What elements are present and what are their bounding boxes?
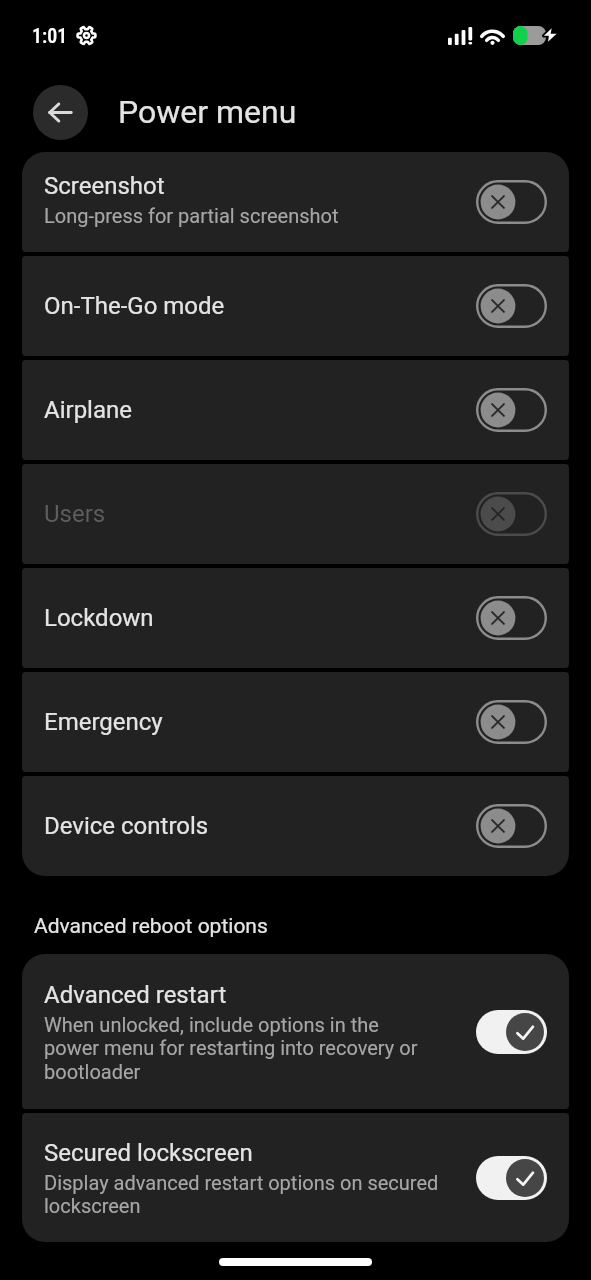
button[interactable]: Device controls [22, 776, 569, 876]
button[interactable]: Users [22, 464, 569, 564]
staticText: Advanced reboot options [34, 914, 268, 939]
staticText: Emergency [44, 708, 163, 736]
staticText: Secured lockscreen [44, 1139, 253, 1167]
staticText: Power menu [118, 93, 297, 131]
staticText: 1:01 [32, 24, 68, 47]
staticText: Display advanced restart options on secu… [44, 1171, 444, 1217]
staticText: When unlocked, include options in the po… [44, 1013, 436, 1083]
button[interactable]: Screenshot [22, 152, 569, 252]
button[interactable]: Airplane [22, 360, 569, 460]
button[interactable]: Emergency [22, 672, 569, 772]
button[interactable]: Lockdown [22, 568, 569, 668]
button[interactable]: Back [33, 85, 88, 140]
staticText: On-The-Go mode [44, 292, 225, 320]
button[interactable]: On-The-Go mode [22, 256, 569, 356]
staticText: Screenshot [44, 172, 165, 200]
button[interactable]: Secured lockscreen [22, 1113, 569, 1242]
staticText: Airplane [44, 396, 132, 424]
button[interactable]: Advanced restart [22, 954, 569, 1109]
staticText: Device controls [44, 812, 209, 840]
staticText: Users [44, 500, 106, 528]
staticText: Long-press for partial screenshot [44, 204, 339, 227]
staticText: Advanced restart [44, 981, 227, 1009]
staticText: Lockdown [44, 604, 154, 632]
